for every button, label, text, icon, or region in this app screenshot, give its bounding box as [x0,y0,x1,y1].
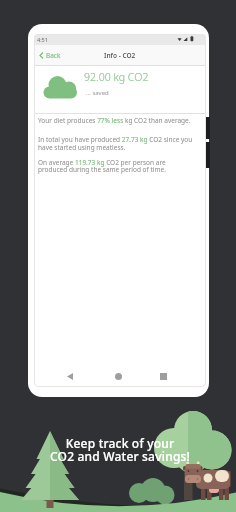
staticText: ... saved [86,89,109,97]
staticText: have started using meatless. [38,143,126,152]
button[interactable] [157,370,169,382]
staticText: produced during the same period of time. [38,165,166,174]
button[interactable] [64,370,76,382]
staticText: CO2 and Water savings! [2,448,236,464]
staticText: Keep track of your [2,435,236,451]
staticText: Your diet produces 77% less kg CO2 than … [38,116,191,125]
staticText: Back [46,51,61,60]
button[interactable] [112,370,124,382]
button[interactable]: Back [39,51,61,60]
staticText: On average 119.73 kg CO2 per person are [38,158,166,167]
staticText: Info - CO2 [104,51,136,60]
staticText: 4:51 [37,36,48,43]
staticText: 92.00 kg CO2 [84,70,149,84]
staticText: In total you have produced 27.73 kg CO2 … [38,135,193,144]
